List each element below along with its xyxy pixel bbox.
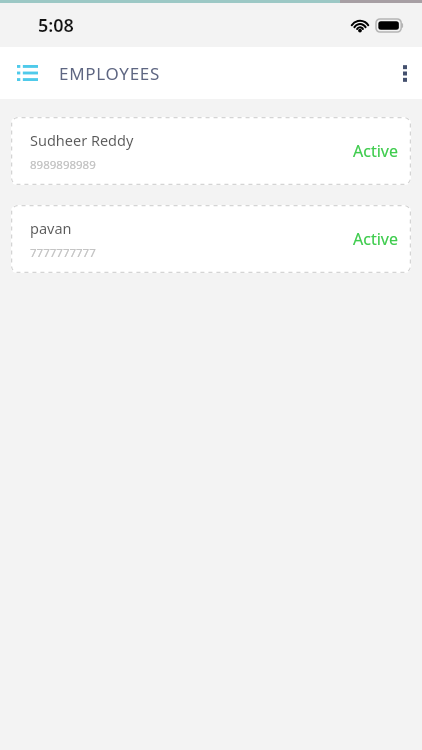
staticText: Active — [353, 140, 398, 162]
staticText: 5:08 — [38, 13, 74, 38]
button[interactable]: pavan — [11, 205, 411, 273]
staticText: 7777777777 — [30, 245, 96, 261]
staticText: Active — [353, 228, 398, 250]
staticText: EMPLOYEES — [59, 62, 160, 85]
staticText: pavan — [30, 218, 72, 238]
button[interactable]: Sudheer Reddy — [11, 117, 411, 185]
button[interactable]: More options — [388, 55, 422, 92]
staticText: 8989898989 — [30, 157, 96, 173]
staticText: Sudheer Reddy — [30, 130, 134, 150]
button[interactable]: Navigation menu — [0, 57, 48, 89]
